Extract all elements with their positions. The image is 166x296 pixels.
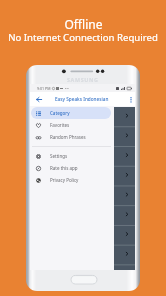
button[interactable]: Rate this app [31,162,111,174]
staticText: Random Phrases [50,134,86,140]
staticText: Settings [50,153,68,159]
button[interactable]: Random Phrases [31,131,111,143]
staticText: No Internet Connection Required [8,31,158,44]
staticText: Category [50,110,70,116]
staticText: Privacy Policy [50,177,79,183]
staticText: Rate this app [50,165,78,171]
button[interactable]: Category [31,107,111,119]
staticText: SAMSUNG [67,76,99,83]
button[interactable]: More options [126,92,136,106]
staticText: Favorites [50,122,70,128]
button[interactable]: Category list [114,107,135,270]
staticText: 9:01 PM [37,86,51,91]
button[interactable]: Back [33,92,44,106]
button[interactable]: Privacy Policy [31,174,111,186]
staticText: Easy Speaks Indonesian [55,96,109,102]
button[interactable]: Favorites [31,119,111,131]
button[interactable]: Settings [31,150,111,162]
staticText: Offline [64,16,103,32]
